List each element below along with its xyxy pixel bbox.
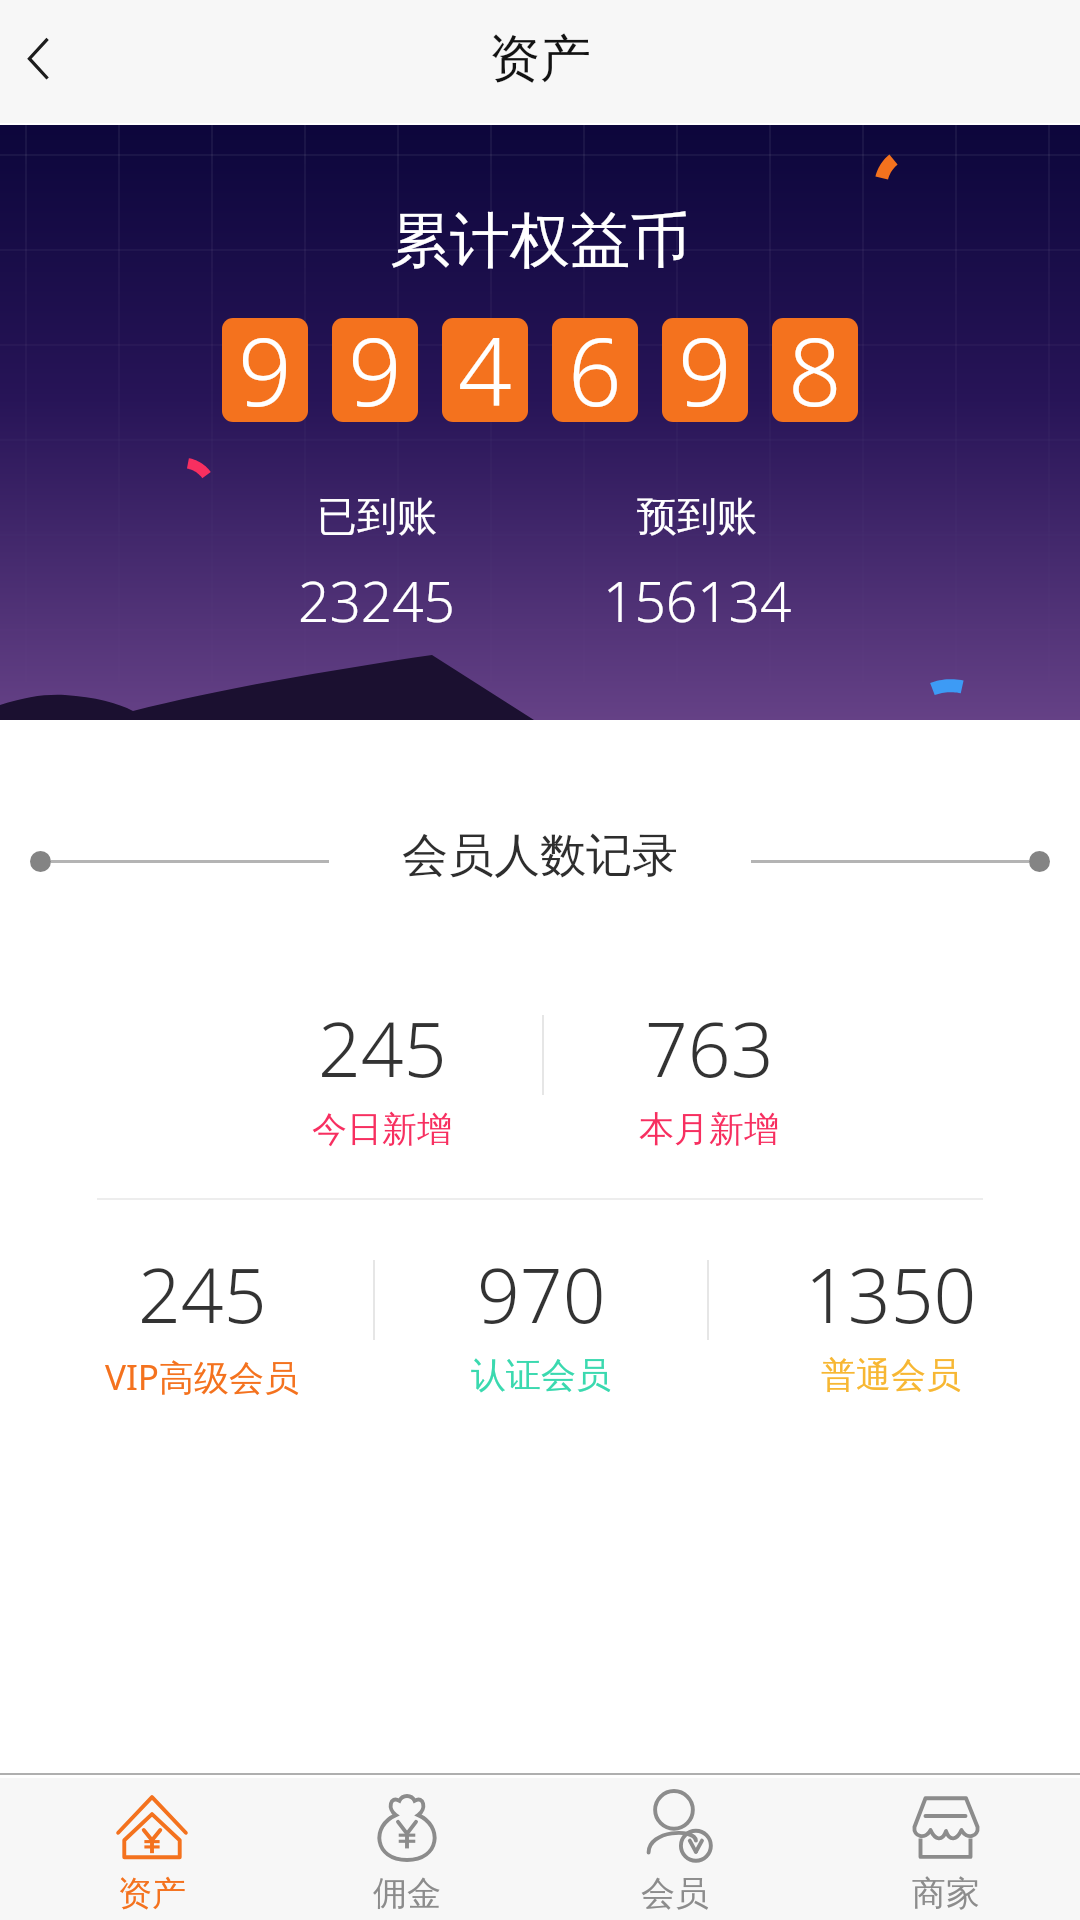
- button[interactable]: 会员: [540, 1773, 810, 1920]
- staticText: 4: [458, 318, 512, 410]
- button[interactable]: 1350: [709, 1243, 1073, 1397]
- staticText: 资产: [489, 27, 591, 91]
- staticText: 9: [678, 318, 732, 410]
- staticText: 累计权益币: [390, 203, 690, 279]
- staticText: 资产: [118, 1872, 186, 1915]
- staticText: 今日新增: [312, 1107, 452, 1151]
- button[interactable]: 资产: [0, 1773, 270, 1920]
- staticText: 23245: [298, 563, 456, 638]
- button[interactable]: 245: [31, 1243, 373, 1401]
- staticText: 970: [477, 1243, 606, 1345]
- staticText: 763: [645, 997, 774, 1099]
- staticText: 预到账: [637, 491, 757, 541]
- staticText: 6: [568, 318, 622, 410]
- button[interactable]: 245: [222, 997, 542, 1151]
- staticText: 认证会员: [471, 1353, 611, 1397]
- staticText: 9: [238, 318, 292, 410]
- staticText: 1350: [805, 1243, 977, 1345]
- staticText: 会员人数记录: [402, 827, 678, 885]
- staticText: 普通会员: [821, 1353, 961, 1397]
- staticText: 245: [318, 997, 447, 1099]
- staticText: 本月新增: [639, 1107, 779, 1151]
- button[interactable]: 商家: [810, 1773, 1080, 1920]
- staticText: 245: [138, 1243, 267, 1345]
- button[interactable]: 763: [544, 997, 874, 1151]
- button[interactable]: 970: [375, 1243, 707, 1397]
- button[interactable]: Back: [10, 25, 70, 85]
- staticText: 9: [348, 318, 402, 410]
- staticText: 已到账: [317, 491, 437, 541]
- staticText: 156134: [603, 563, 792, 638]
- staticText: VIP高级会员: [105, 1353, 300, 1401]
- staticText: 商家: [912, 1872, 980, 1915]
- staticText: 8: [788, 318, 842, 410]
- staticText: 会员: [641, 1872, 709, 1915]
- button[interactable]: 佣金: [270, 1773, 540, 1920]
- staticText: 佣金: [373, 1872, 441, 1915]
